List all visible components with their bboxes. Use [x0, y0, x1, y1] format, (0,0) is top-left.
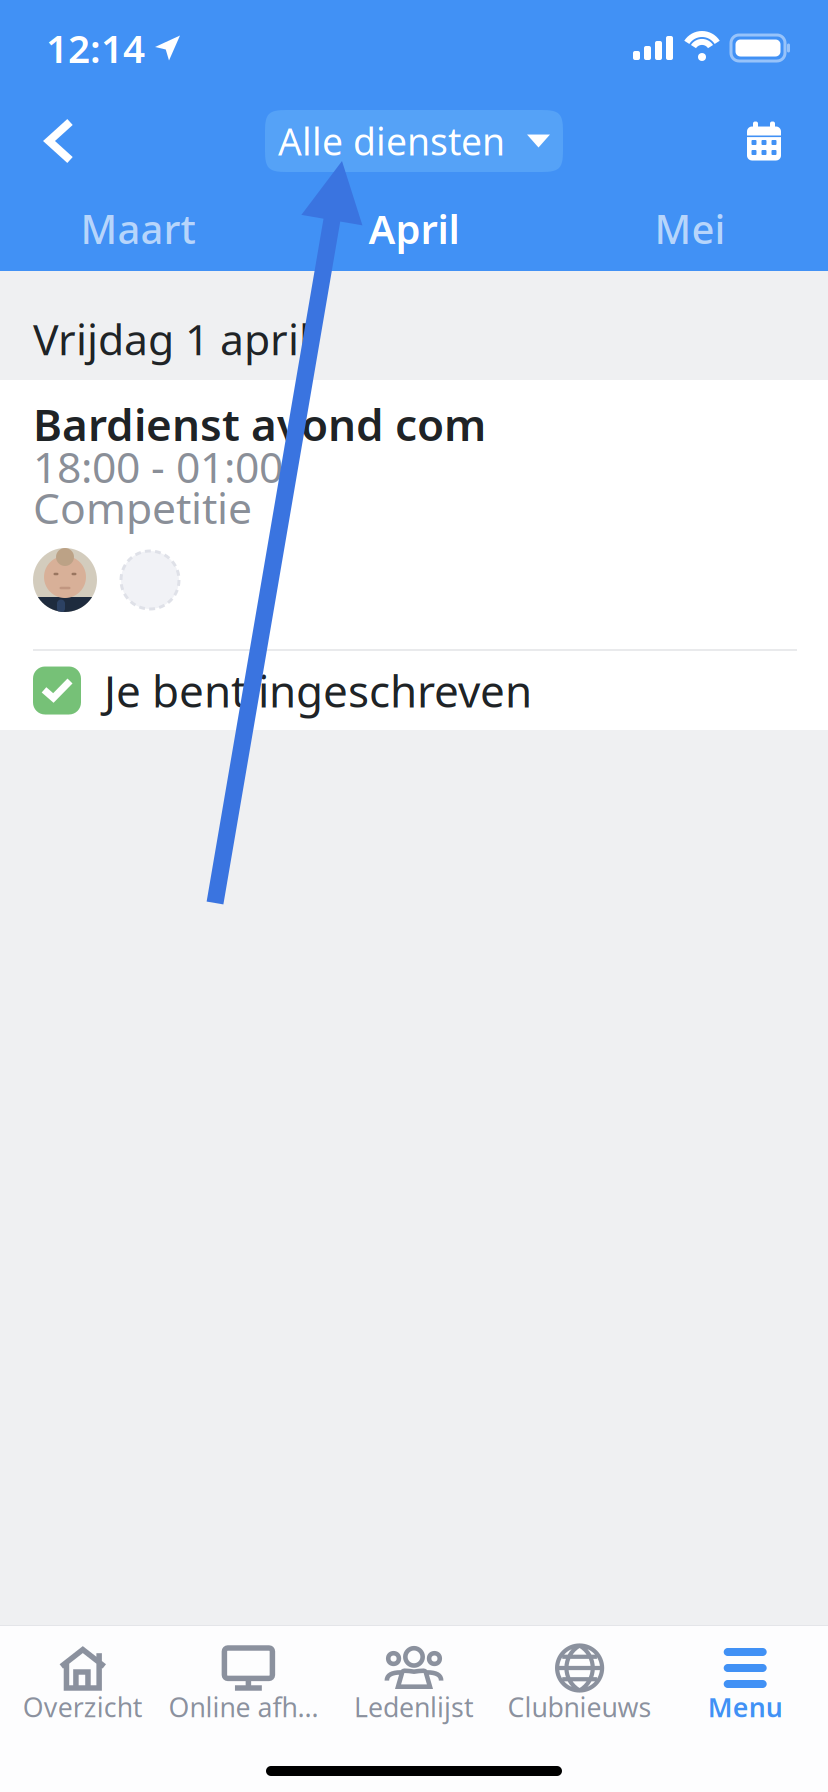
button[interactable]: Overzicht [0, 1646, 166, 1724]
button[interactable]: Ledenlijst [331, 1646, 497, 1724]
button[interactable]: Kalender [725, 105, 806, 176]
staticText: Online afhang… [168, 1689, 328, 1725]
staticText: Ledenlijst [354, 1689, 474, 1725]
staticText: Bardienst avond com [33, 395, 486, 453]
staticText: Je bent ingeschreven [104, 661, 532, 720]
button[interactable]: Maart [0, 186, 276, 271]
staticText: Menu [708, 1689, 783, 1725]
button[interactable]: Terug [22, 102, 96, 180]
staticText: Maart [80, 202, 195, 255]
button[interactable]: Menu [662, 1646, 828, 1724]
button[interactable]: Online afhang… [166, 1646, 331, 1724]
button[interactable]: Bardienst avond com [0, 380, 828, 730]
staticText: Mei [654, 202, 725, 255]
staticText: 18:00 - 01:00 [33, 438, 283, 495]
staticText: Vrijdag 1 april [33, 310, 310, 367]
button[interactable]: Clubnieuws [497, 1646, 662, 1724]
staticText: April [368, 202, 459, 255]
button[interactable]: Mei [552, 186, 828, 271]
button[interactable]: April [276, 186, 552, 271]
button[interactable]: Alle diensten [265, 110, 563, 172]
staticText: Competitie [33, 479, 252, 536]
staticText: Overzicht [23, 1689, 143, 1725]
staticText: Clubnieuws [508, 1689, 652, 1725]
staticText: 12:14 [46, 22, 145, 74]
staticText: Alle diensten [278, 116, 505, 166]
